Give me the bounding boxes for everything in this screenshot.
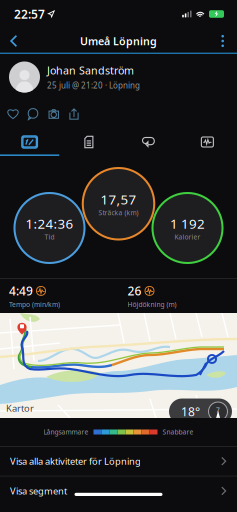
staticText: Sträcka (km) bbox=[98, 208, 138, 217]
staticText: 17,57 bbox=[100, 190, 136, 208]
button[interactable]: Visa segment bbox=[0, 476, 237, 505]
button[interactable]: Splits bbox=[59, 128, 118, 156]
staticText: 1 192 bbox=[170, 215, 205, 232]
button[interactable]: Comment bbox=[26, 100, 40, 128]
staticText: 4:49 bbox=[9, 283, 33, 299]
button[interactable]: Analysis bbox=[178, 128, 237, 156]
button[interactable]: Back bbox=[2, 28, 25, 54]
staticText: Kalorier bbox=[174, 232, 200, 241]
button[interactable]: Visa alla aktiviteter för Löpning bbox=[0, 447, 237, 476]
button[interactable]: More options bbox=[210, 28, 235, 54]
staticText: 26 bbox=[127, 283, 141, 299]
staticText: Tempo (min/km) bbox=[9, 300, 60, 309]
staticText: 18° bbox=[181, 403, 200, 419]
staticText: Johan Sandström bbox=[47, 63, 134, 78]
staticText: Höjdökning (m) bbox=[127, 300, 176, 309]
button[interactable]: Gear bbox=[118, 128, 178, 156]
staticText: Snabbare bbox=[162, 428, 193, 436]
button[interactable]: Overview bbox=[0, 128, 59, 156]
button[interactable]: Photos bbox=[46, 100, 61, 128]
staticText: 22:57 bbox=[14, 6, 45, 22]
staticText: Kartor bbox=[6, 402, 34, 414]
button[interactable]: Share bbox=[67, 100, 80, 128]
staticText: 7 bbox=[216, 405, 220, 414]
staticText: Visa segment bbox=[10, 485, 67, 497]
staticText: Bolesholmarna bbox=[151, 421, 199, 430]
staticText: Umeå Löpning bbox=[80, 34, 157, 48]
staticText: 25 juli @ 21:20 · Löpning bbox=[47, 80, 140, 91]
staticText: Visa alla aktiviteter för Löpning bbox=[10, 455, 141, 467]
staticText: Långsammare bbox=[43, 428, 88, 436]
button[interactable]: Like bbox=[6, 100, 20, 128]
staticText: 1:24:36 bbox=[25, 215, 73, 232]
staticText: Tid bbox=[44, 232, 54, 241]
